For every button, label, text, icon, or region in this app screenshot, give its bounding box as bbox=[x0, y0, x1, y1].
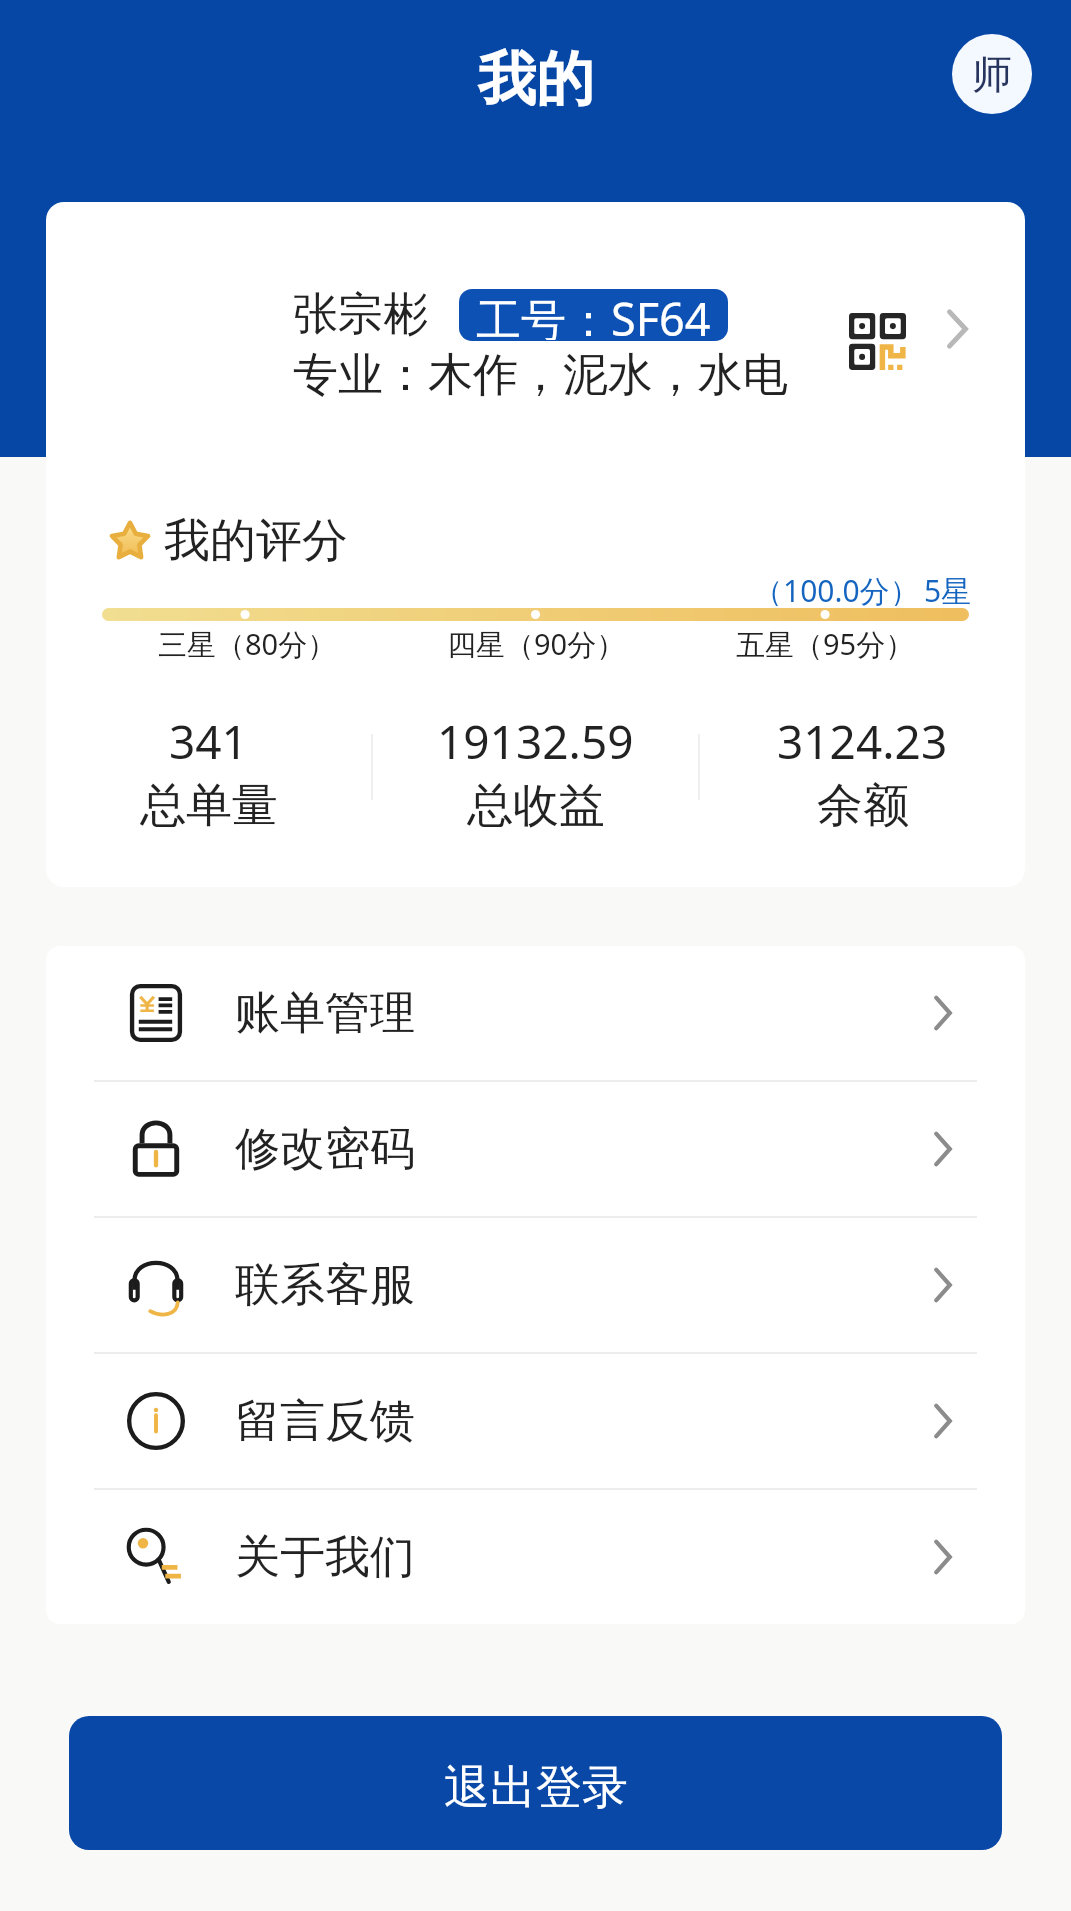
staticText: 5星 bbox=[924, 570, 972, 606]
staticText: 关于我们 bbox=[235, 1529, 415, 1586]
button[interactable]: Profile avatar bbox=[952, 34, 1032, 114]
staticText: 我的 bbox=[478, 43, 594, 116]
staticText: 总单量 bbox=[140, 777, 278, 835]
staticText: 三星（80分） bbox=[158, 624, 337, 664]
staticText: 341 bbox=[169, 710, 248, 773]
button[interactable]: 张宗彬 bbox=[46, 202, 1025, 455]
staticText: 我的评分 bbox=[164, 512, 348, 570]
staticText: 余额 bbox=[817, 777, 909, 835]
staticText: 张宗彬 bbox=[293, 286, 428, 343]
button[interactable]: 修改密码 bbox=[46, 1082, 1025, 1216]
button[interactable]: 关于我们 bbox=[46, 1490, 1025, 1624]
button[interactable]: 留言反馈 bbox=[46, 1354, 1025, 1488]
staticText: 账单管理 bbox=[235, 985, 415, 1042]
staticText: 总收益 bbox=[467, 777, 605, 835]
staticText: 师 bbox=[972, 49, 1012, 99]
staticText: （100.0分） bbox=[753, 570, 920, 606]
staticText: 退出登录 bbox=[444, 1759, 628, 1817]
staticText: 四星（90分） bbox=[447, 624, 626, 664]
staticText: 工号：SF64 bbox=[476, 289, 711, 340]
other: QR code bbox=[849, 313, 906, 370]
staticText: 修改密码 bbox=[235, 1121, 415, 1178]
staticText: 留言反馈 bbox=[235, 1393, 415, 1450]
button[interactable]: 退出登录 bbox=[69, 1716, 1002, 1850]
button[interactable]: 账单管理 bbox=[46, 946, 1025, 1080]
staticText: 专业：木作，泥水，水电 bbox=[293, 347, 788, 404]
staticText: 五星（95分） bbox=[736, 624, 915, 664]
staticText: 3124.23 bbox=[777, 710, 948, 773]
staticText: 联系客服 bbox=[235, 1257, 415, 1314]
button[interactable]: 联系客服 bbox=[46, 1218, 1025, 1352]
staticText: 19132.59 bbox=[437, 710, 634, 773]
